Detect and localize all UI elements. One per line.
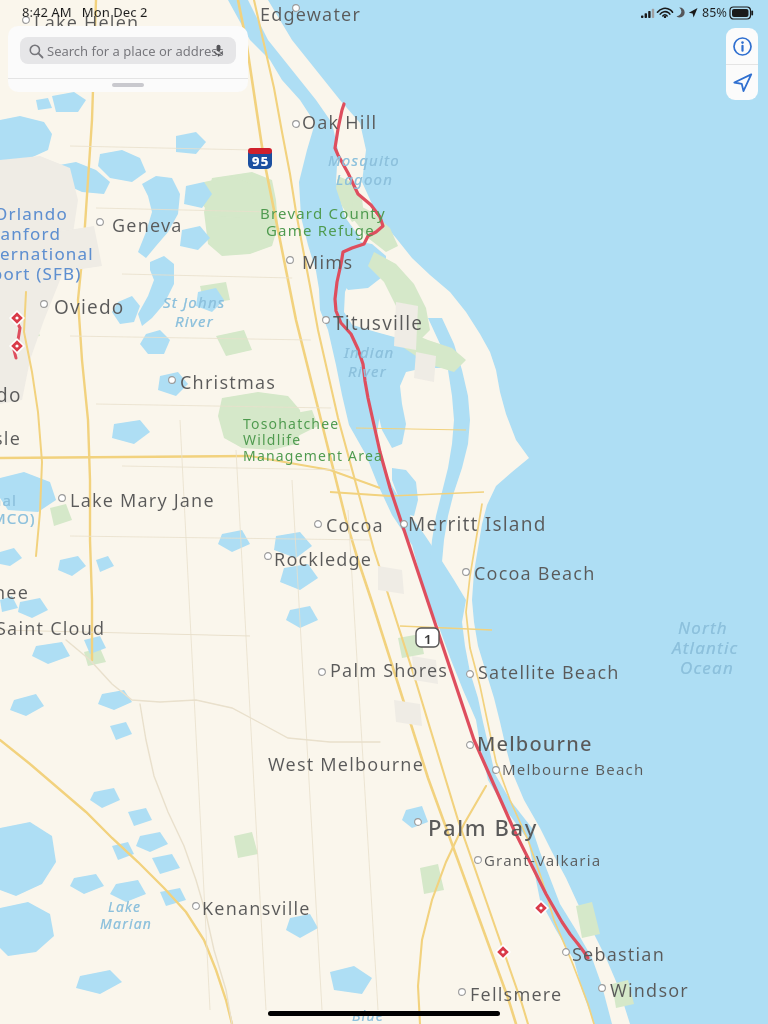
- button[interactable]: Map information: [726, 28, 758, 64]
- staticText: 85%: [702, 4, 727, 21]
- staticText: North: [678, 616, 728, 639]
- staticText: Game Refuge: [266, 220, 375, 240]
- staticText: Mims: [302, 250, 354, 275]
- staticText: International: [0, 242, 94, 265]
- staticText: Airport (SFB): [0, 262, 82, 285]
- staticText: Oak Hill: [302, 110, 378, 135]
- staticText: Wildlife: [243, 430, 302, 449]
- staticText: Satellite Beach: [478, 660, 620, 685]
- staticText: nee: [0, 580, 30, 605]
- staticText: Grant-Valkaria: [484, 850, 602, 870]
- staticText: 1: [424, 630, 433, 648]
- button[interactable]: Search for a place or address: [20, 37, 236, 64]
- staticText: St Johns: [163, 292, 226, 312]
- staticText: Marian: [100, 914, 153, 933]
- staticText: Saint Cloud: [0, 616, 106, 641]
- staticText: Palm Bay: [428, 812, 538, 842]
- staticText: Titusville: [333, 310, 424, 336]
- staticText: River: [175, 311, 214, 331]
- staticText: MCO): [0, 508, 36, 528]
- staticText: Tosohatchee: [243, 414, 340, 433]
- staticText: 8:42 AM Mon Dec 2: [22, 3, 148, 21]
- staticText: West Melbourne: [268, 752, 425, 777]
- staticText: Brevard County: [260, 203, 386, 223]
- staticText: Melbourne: [477, 730, 593, 757]
- staticText: Orlando: [0, 202, 68, 225]
- staticText: Fellsmere: [470, 982, 563, 1007]
- staticText: nal: [0, 490, 18, 510]
- staticText: Atlantic: [672, 636, 739, 659]
- staticText: Ocean: [680, 656, 734, 679]
- staticText: Management Area: [243, 446, 384, 465]
- staticText: Oviedo: [54, 294, 125, 320]
- staticText: Lake: [108, 897, 142, 916]
- staticText: Blue: [352, 1006, 384, 1024]
- staticText: Kenansville: [202, 896, 311, 921]
- staticText: Edgewater: [260, 2, 362, 27]
- staticText: do: [0, 382, 22, 408]
- staticText: Mosquito: [328, 150, 400, 170]
- staticText: Search for a place or address: [47, 42, 224, 60]
- staticText: Sanford: [0, 222, 62, 245]
- staticText: Lagoon: [336, 169, 394, 189]
- staticText: Merritt Island: [408, 511, 547, 537]
- staticText: Geneva: [112, 213, 183, 238]
- staticText: Cocoa: [326, 513, 384, 538]
- staticText: Lake Mary Jane: [70, 488, 215, 513]
- staticText: sle: [0, 426, 22, 451]
- staticText: Christmas: [180, 370, 277, 395]
- staticText: Sebastian: [572, 942, 665, 967]
- staticText: Indian: [344, 342, 395, 362]
- staticText: Rockledge: [274, 547, 373, 572]
- staticText: Palm Shores: [330, 658, 449, 683]
- staticText: River: [348, 361, 387, 381]
- staticText: Windsor: [610, 978, 689, 1003]
- staticText: Melbourne Beach: [502, 759, 645, 779]
- staticText: 95: [252, 152, 270, 170]
- button[interactable]: Show my location: [726, 65, 758, 100]
- staticText: Cocoa Beach: [474, 561, 596, 586]
- staticText: Lake Helen: [34, 10, 140, 35]
